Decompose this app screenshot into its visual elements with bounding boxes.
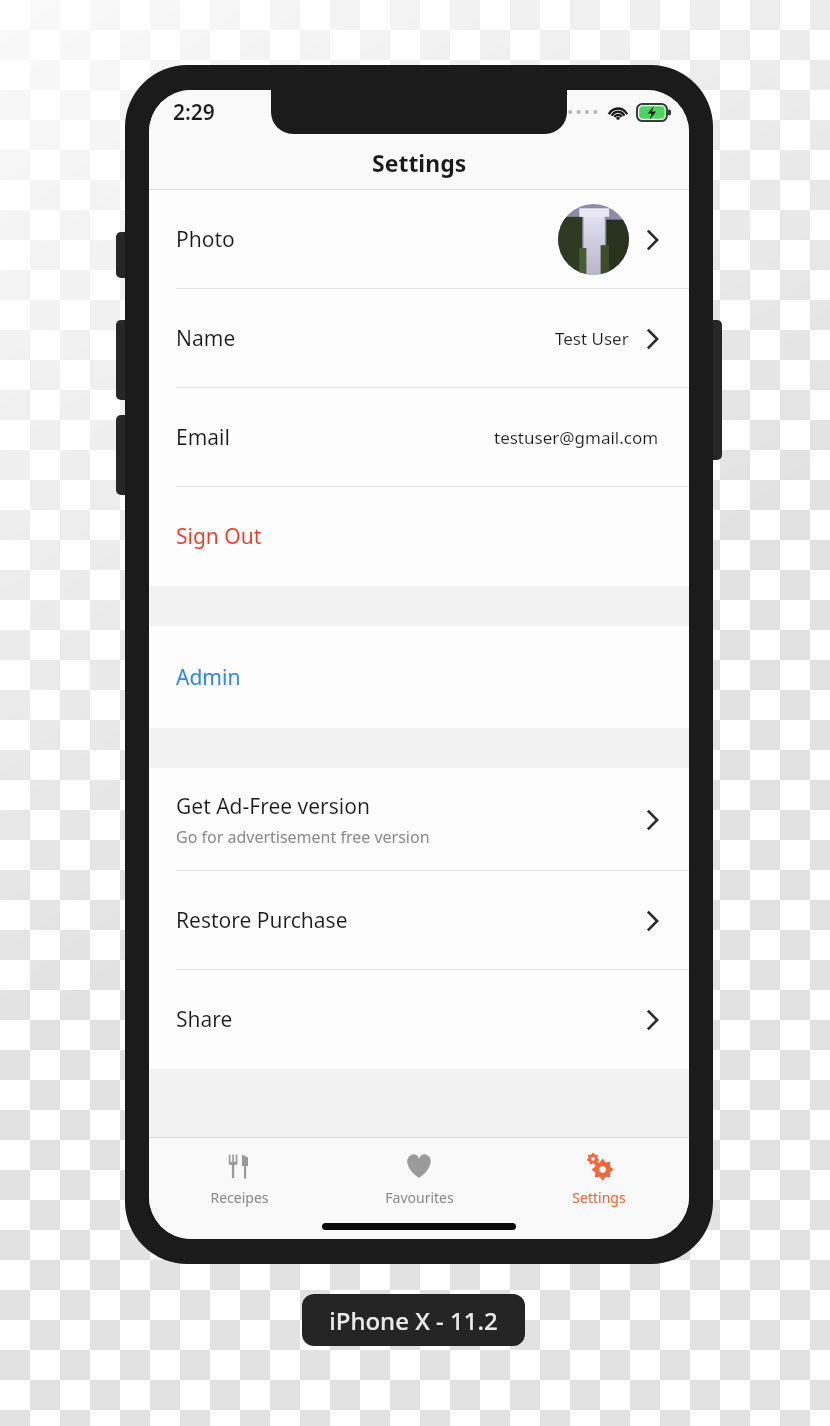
staticText: iPhone X - 11.2 (329, 1304, 498, 1337)
button[interactable]: Get Ad-Free version (149, 768, 689, 871)
staticText: Test User (555, 327, 629, 350)
button[interactable]: Admin (149, 626, 689, 728)
button[interactable]: iPhone X - 11.2 (302, 1294, 525, 1346)
button[interactable]: Sign Out (149, 487, 689, 586)
staticText: Settings (372, 147, 467, 178)
staticText: testuser@gmail.com (494, 426, 659, 449)
staticText: Get Ad-Free version (176, 792, 370, 821)
button[interactable]: Share (149, 970, 689, 1069)
button[interactable]: Photo (149, 190, 689, 289)
button[interactable]: Receipes (149, 1137, 329, 1219)
button[interactable]: Email (149, 388, 689, 487)
staticText: Receipes (210, 1188, 269, 1207)
button[interactable]: Restore Purchase (149, 871, 689, 970)
staticText: Favourites (385, 1188, 454, 1207)
button[interactable]: Favourites (329, 1137, 509, 1219)
staticText: 2:29 (173, 98, 215, 127)
button[interactable]: Settings (509, 1137, 689, 1219)
other: Profile photo (558, 204, 629, 275)
staticText: Sign Out (176, 522, 262, 551)
staticText: Email (176, 423, 230, 452)
staticText: Settings (572, 1188, 626, 1207)
staticText: Name (176, 324, 236, 353)
staticText: Go for advertisement free version (176, 826, 430, 848)
staticText: Restore Purchase (176, 906, 348, 935)
staticText: Photo (176, 225, 235, 254)
staticText: Admin (176, 663, 241, 692)
staticText: Share (176, 1005, 233, 1034)
button[interactable]: Name (149, 289, 689, 388)
